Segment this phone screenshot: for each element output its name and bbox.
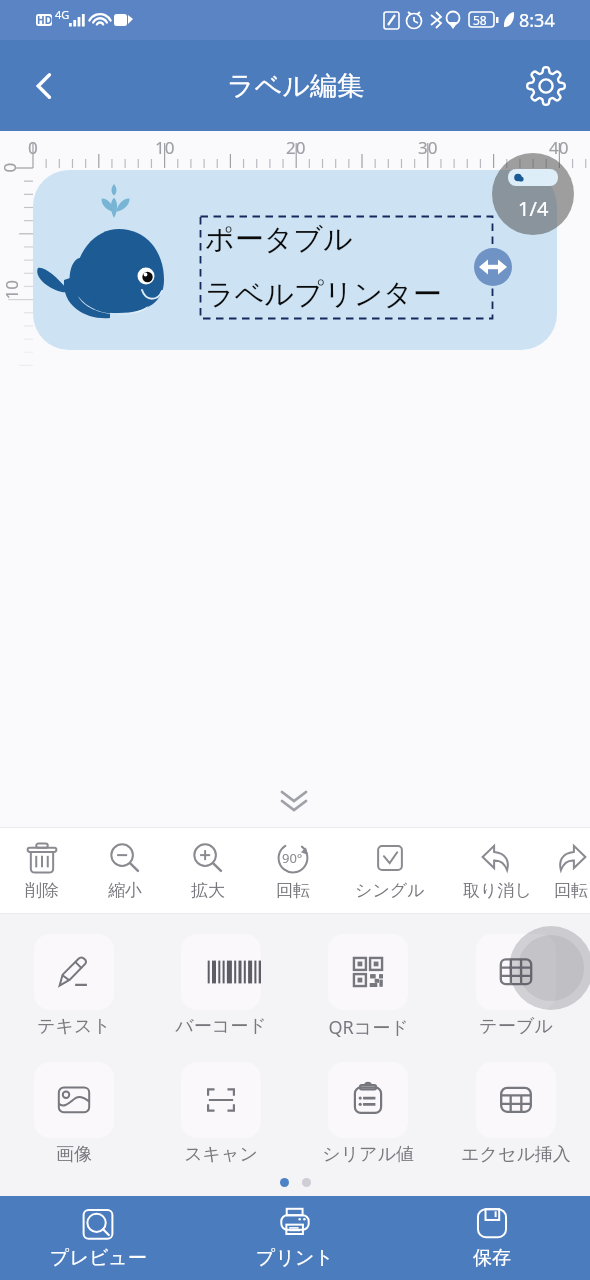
staticText: ラベルプリンター	[205, 276, 442, 313]
button[interactable]: 保存	[393, 1196, 590, 1280]
staticText: 30	[418, 136, 438, 159]
staticText: バーコード	[175, 1015, 267, 1038]
button[interactable]: Settings	[502, 40, 590, 131]
staticText: ラベル編集	[227, 69, 364, 103]
staticText: 回転	[276, 880, 310, 901]
staticText: 8:34	[519, 8, 555, 33]
staticText: エクセル挿入	[461, 1143, 571, 1166]
staticText: プレビュー	[50, 1246, 147, 1270]
staticText: 拡大	[191, 880, 225, 901]
button[interactable]: 削除	[0, 828, 83, 913]
button[interactable]: 取り消し	[442, 828, 552, 913]
button[interactable]: プリント	[196, 1196, 393, 1280]
button[interactable]: 回転	[552, 828, 590, 913]
button[interactable]: バーコード	[147, 914, 294, 1042]
button[interactable]: シングル	[337, 828, 442, 913]
button[interactable]: テキスト	[0, 914, 147, 1042]
staticText: 20	[286, 136, 306, 159]
staticText: スキャン	[184, 1143, 258, 1166]
staticText: テーブル	[479, 1015, 553, 1038]
button[interactable]: 縮小	[83, 828, 166, 913]
button[interactable]: QRコード	[294, 914, 442, 1042]
staticText: 縮小	[108, 880, 142, 901]
button[interactable]: Collapse panel	[266, 774, 322, 830]
staticText: シリアル値	[322, 1143, 414, 1166]
button[interactable]: 拡大	[166, 828, 249, 913]
staticText: ポータブル	[205, 221, 353, 258]
staticText: 58	[473, 12, 487, 28]
staticText: HD	[37, 13, 52, 27]
staticText: プリント	[256, 1246, 334, 1270]
button[interactable]: エクセル挿入	[442, 1042, 590, 1170]
staticText: 保存	[473, 1246, 511, 1270]
button[interactable]: Page 1 of 4 preview	[492, 153, 574, 235]
button[interactable]: 画像	[0, 1042, 147, 1170]
button[interactable]: 90°	[249, 828, 337, 913]
button[interactable]: スキャン	[147, 1042, 294, 1170]
staticText: 40	[549, 136, 569, 159]
staticText: テキスト	[37, 1015, 111, 1038]
staticText: シングル	[355, 880, 425, 901]
staticText: 1/4	[518, 195, 549, 222]
button[interactable]: Resize width	[474, 248, 512, 286]
staticText: 取り消し	[463, 880, 532, 901]
staticText: 画像	[56, 1143, 92, 1166]
staticText: 10	[155, 136, 175, 159]
staticText: QRコード	[328, 1015, 409, 1040]
button[interactable]: シリアル値	[294, 1042, 442, 1170]
staticText: 10	[0, 279, 22, 299]
staticText: 0	[28, 136, 38, 159]
staticText: 0	[0, 162, 20, 172]
staticText: 回転	[554, 880, 588, 901]
button[interactable]: テーブル	[442, 914, 590, 1042]
staticText: 90°	[282, 849, 303, 867]
button[interactable]: プレビュー	[0, 1196, 196, 1280]
staticText: 削除	[25, 880, 59, 901]
button[interactable]: Back	[0, 40, 88, 131]
staticText: 4G	[55, 7, 70, 22]
